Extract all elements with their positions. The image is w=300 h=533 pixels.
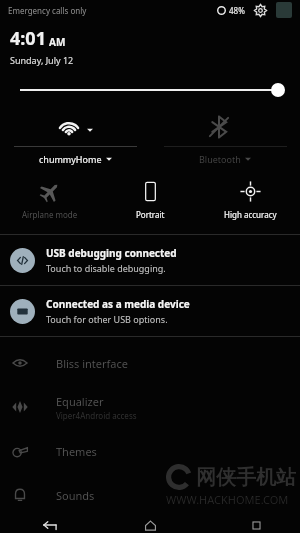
staticText: Viper4Android access (56, 410, 137, 421)
button[interactable]: Connected as a media device (0, 286, 300, 336)
button[interactable]: Home (144, 519, 157, 532)
staticText: chummyHome (39, 153, 102, 165)
button[interactable]: Brightness (0, 80, 300, 100)
button[interactable]: USB debugging connected (0, 235, 300, 285)
staticText: 4:01 (10, 26, 46, 51)
button[interactable]: User profile (276, 2, 292, 18)
staticText: Emergency calls only (8, 5, 87, 16)
staticText: Touch for other USB options. (46, 313, 168, 325)
staticText: Portrait (136, 209, 165, 220)
staticText: Themes (56, 444, 97, 459)
staticText: Sunday, July 12 (10, 54, 74, 66)
staticText: Airplane mode (22, 209, 78, 220)
staticText: WWW.HACKHOME.COM (166, 492, 289, 507)
staticText: Equalizer (56, 394, 104, 409)
button[interactable]: Themes (0, 429, 300, 473)
staticText: 48% (229, 5, 245, 16)
staticText: AM (49, 35, 66, 49)
staticText: High accuracy (224, 209, 277, 220)
button[interactable]: Sounds (0, 473, 300, 517)
button[interactable]: Equalizer (0, 385, 300, 429)
staticText: USB debugging connected (46, 246, 177, 260)
staticText: Bluetooth (199, 153, 241, 165)
button[interactable]: High accuracy (200, 181, 300, 220)
button[interactable]: Bluetooth (150, 112, 300, 165)
staticText: Touch to disable debugging. (46, 262, 166, 274)
button[interactable]: Back (42, 517, 58, 533)
button[interactable]: Portrait (100, 181, 200, 220)
button[interactable]: Settings (254, 4, 267, 17)
staticText: Connected as a media device (46, 297, 190, 311)
button[interactable]: Recents (251, 520, 262, 531)
button[interactable]: Bliss interface (0, 341, 300, 385)
staticText: Bliss interface (56, 356, 129, 371)
staticText: 网侠手机站 (196, 465, 296, 490)
staticText: Sounds (56, 488, 95, 503)
button[interactable]: chummyHome (0, 112, 150, 165)
button[interactable]: Airplane mode (0, 181, 100, 220)
